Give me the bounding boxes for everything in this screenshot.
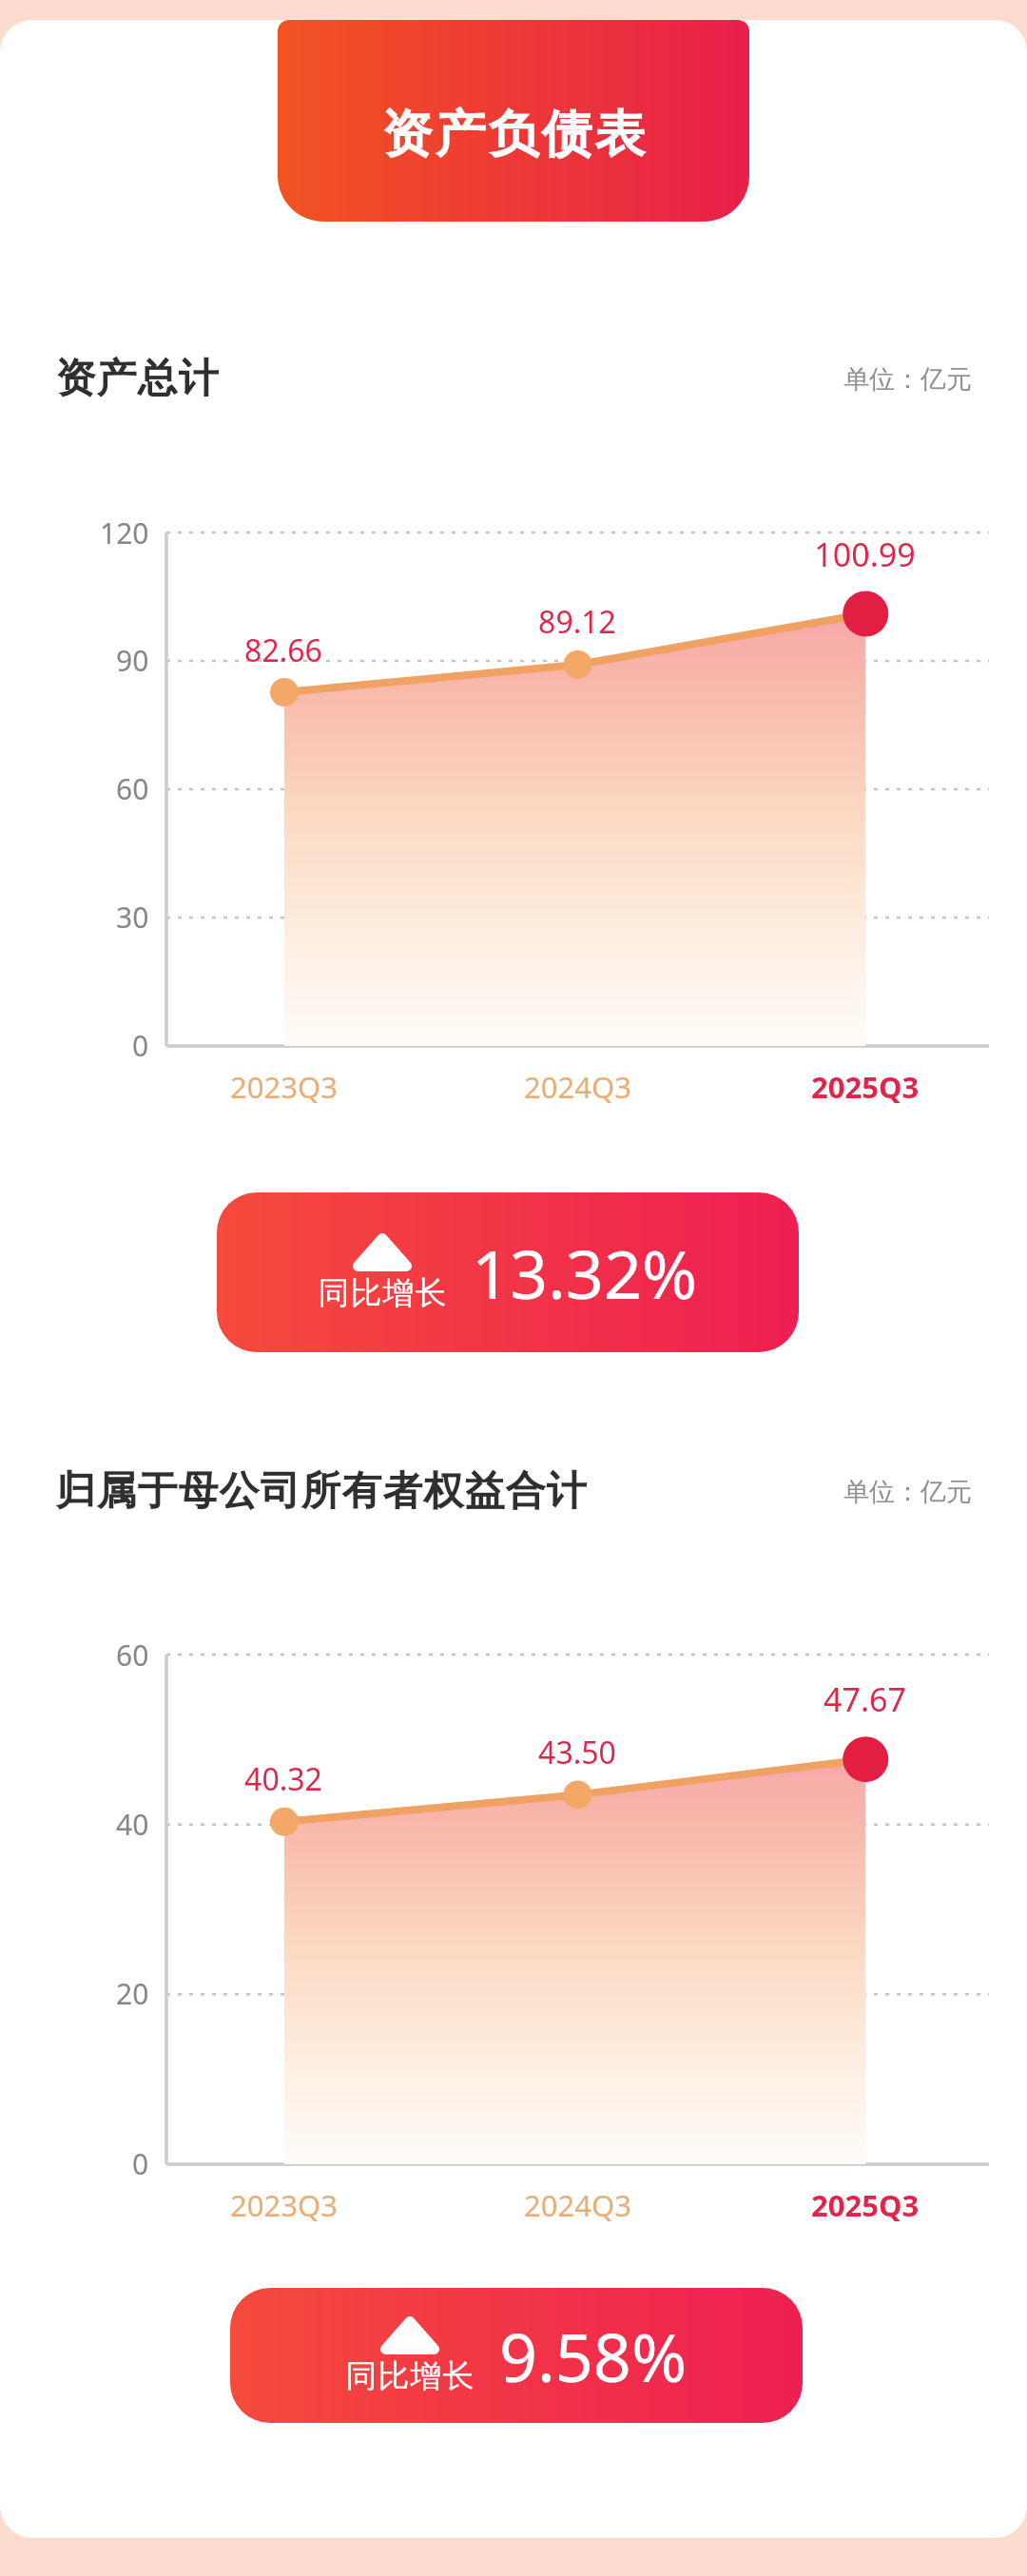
staticText: 90 <box>116 641 149 680</box>
staticText: 30 <box>116 898 149 937</box>
staticText: 60 <box>116 1636 149 1675</box>
staticText: 资产负债表 <box>380 103 647 166</box>
staticText: 40 <box>116 1805 149 1844</box>
staticText: 2023Q3 <box>230 2185 338 2225</box>
staticText: 47.67 <box>824 1677 906 1721</box>
staticText: 89.12 <box>538 601 616 643</box>
staticText: 2024Q3 <box>524 1067 631 1107</box>
staticText: 归属于母公司所有者权益合计 <box>55 1466 587 1517</box>
staticText: 单位：亿元 <box>843 1476 972 1508</box>
staticText: 同比增长 <box>345 2356 475 2396</box>
staticText: 0 <box>132 1026 149 1065</box>
button[interactable]: 同比增长上升 <box>230 2288 803 2423</box>
other: 同比增长上升 <box>380 2316 439 2354</box>
staticText: 82.66 <box>244 629 322 671</box>
staticText: 0 <box>132 2144 149 2183</box>
staticText: 100.99 <box>814 533 916 576</box>
staticText: 2023Q3 <box>230 1067 338 1107</box>
staticText: 13.32% <box>472 1228 698 1318</box>
staticText: 2025Q3 <box>811 2185 920 2225</box>
staticText: 20 <box>116 1974 149 2013</box>
staticText: 9.58% <box>499 2311 688 2401</box>
staticText: 60 <box>116 769 149 808</box>
other: 同比增长上升 <box>353 1233 412 1271</box>
button[interactable]: 资产负债表 <box>278 20 749 222</box>
staticText: 单位：亿元 <box>843 363 972 396</box>
staticText: 120 <box>100 513 149 552</box>
staticText: 2025Q3 <box>811 1067 920 1107</box>
staticText: 资产总计 <box>55 354 219 404</box>
staticText: 2024Q3 <box>524 2185 631 2225</box>
staticText: 40.32 <box>244 1758 322 1800</box>
staticText: 同比增长 <box>318 1273 447 1313</box>
staticText: 43.50 <box>538 1732 616 1773</box>
button[interactable]: 同比增长上升 <box>217 1192 799 1352</box>
